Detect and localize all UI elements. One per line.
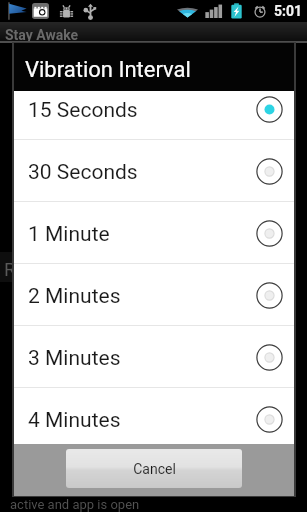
- staticText: 1 Minute: [28, 222, 110, 247]
- button[interactable]: 15 Seconds: [14, 91, 294, 140]
- staticText: 5:01: [274, 3, 303, 19]
- button[interactable]: 2 Minutes: [14, 264, 294, 326]
- staticText: active and app is open: [10, 497, 140, 512]
- staticText: 4 Minutes: [28, 408, 121, 433]
- staticText: 2 Minutes: [28, 284, 121, 309]
- button[interactable]: 30 Seconds: [14, 140, 294, 202]
- staticText: R: [4, 258, 16, 280]
- staticText: Cancel: [133, 461, 176, 477]
- staticText: Vibration Interval: [25, 57, 191, 83]
- button[interactable]: 3 Minutes: [14, 326, 294, 388]
- staticText: 15 Seconds: [28, 98, 138, 123]
- button[interactable]: Cancel: [66, 449, 242, 488]
- staticText: 30 Seconds: [28, 160, 138, 185]
- staticText: 3 Minutes: [28, 346, 121, 371]
- staticText: Stay Awake: [5, 27, 79, 43]
- button[interactable]: 1 Minute: [14, 202, 294, 264]
- button[interactable]: 4 Minutes: [14, 388, 294, 444]
